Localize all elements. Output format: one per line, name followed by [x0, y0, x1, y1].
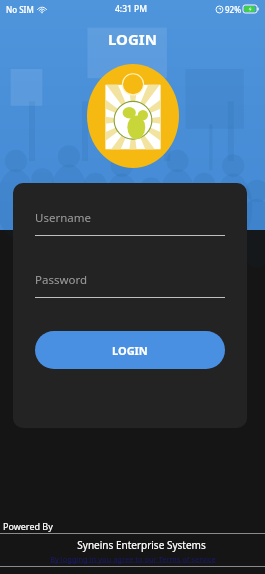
staticText: LOGIN — [108, 29, 157, 49]
button[interactable]: LOGIN — [35, 331, 225, 369]
staticText: LOGIN — [112, 343, 148, 358]
staticText: 4:31 PM — [115, 3, 148, 15]
staticText: 92% — [225, 4, 241, 15]
staticText: No SIM — [6, 4, 34, 15]
other: Location — [216, 6, 223, 13]
other: Battery 92 percent — [243, 5, 259, 13]
button[interactable]: Password — [35, 272, 225, 298]
other: Wi-Fi — [37, 5, 47, 13]
staticText: Username — [35, 210, 91, 226]
staticText: By logging in you agree to our Terms of … — [50, 554, 216, 564]
staticText: Powered By — [3, 520, 53, 532]
staticText: Syneins Enterprise Systems — [18, 538, 265, 552]
staticText: Password — [35, 272, 88, 288]
button[interactable]: Username — [35, 210, 225, 236]
button[interactable]: By logging in you agree to our Terms of … — [0, 554, 265, 564]
